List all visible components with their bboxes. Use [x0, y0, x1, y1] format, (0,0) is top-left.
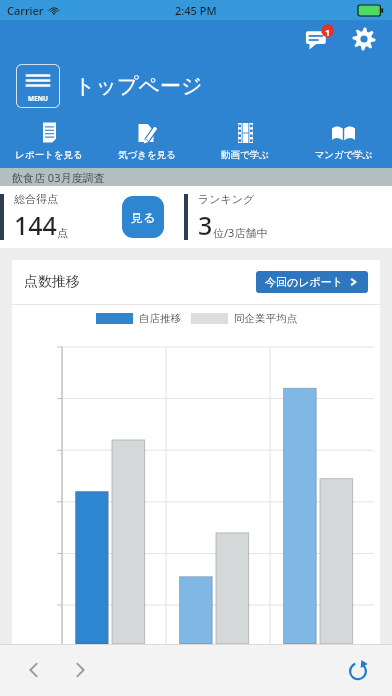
staticText: 1 — [325, 26, 331, 38]
button[interactable]: マンガで学ぶ — [294, 114, 392, 168]
staticText: MENU — [28, 94, 48, 103]
staticText: 144 — [14, 208, 57, 242]
staticText: 位/3店舗中 — [213, 225, 268, 240]
staticText: トップページ — [74, 73, 203, 99]
button[interactable]: 見る — [122, 196, 164, 238]
staticText: 同企業平均点 — [234, 312, 297, 325]
button[interactable]: Forward — [60, 650, 100, 690]
staticText: 動画で学ぶ — [221, 149, 269, 161]
button[interactable]: Settings — [344, 20, 384, 58]
staticText: 自店推移 — [139, 312, 181, 325]
staticText: ランキング — [198, 192, 255, 206]
button[interactable]: Refresh — [338, 650, 378, 690]
staticText: 点数推移 — [24, 273, 80, 291]
staticText: マンガで学ぶ — [314, 149, 373, 161]
staticText: 飲食店 03月度調査 — [12, 170, 105, 185]
button[interactable]: Messages — [300, 20, 340, 58]
staticText: 2:45 PM — [175, 3, 217, 18]
button[interactable]: Menu — [16, 64, 60, 108]
staticText: レポートを見る — [15, 149, 83, 161]
button[interactable]: 動画で学ぶ — [196, 114, 294, 168]
staticText: 気づきを見る — [118, 149, 176, 161]
staticText: 点 — [57, 226, 68, 240]
staticText: 3 — [198, 208, 213, 242]
staticText: 総合得点 — [14, 192, 58, 206]
button[interactable]: 今回のレポート — [256, 271, 368, 293]
staticText: 見る — [131, 210, 156, 225]
button[interactable]: Back — [14, 650, 54, 690]
staticText: 今回のレポート — [265, 275, 344, 289]
staticText: Carrier — [7, 3, 44, 18]
button[interactable]: 気づきを見る — [98, 114, 196, 168]
button[interactable]: レポートを見る — [0, 114, 98, 168]
